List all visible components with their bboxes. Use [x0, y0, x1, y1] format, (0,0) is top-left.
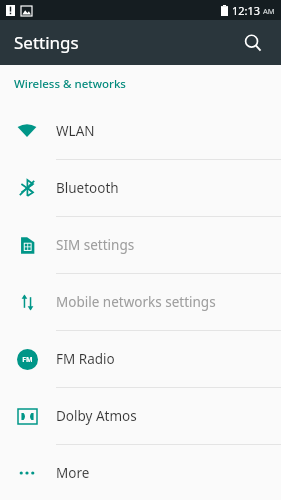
- staticText: WLAN: [56, 122, 95, 140]
- staticText: Wireless & networks: [14, 76, 126, 92]
- staticText: Settings: [14, 31, 79, 54]
- staticText: FM: [22, 355, 33, 365]
- staticText: FM Radio: [56, 350, 115, 368]
- staticText: More: [56, 464, 90, 482]
- staticText: Mobile networks settings: [56, 293, 216, 311]
- button[interactable]: WLAN: [0, 103, 281, 159]
- button[interactable]: Mobile networks settings: [0, 274, 281, 330]
- staticText: Bluetooth: [56, 179, 119, 197]
- staticText: SIM settings: [56, 236, 135, 254]
- staticText: Dolby Atmos: [56, 407, 137, 425]
- button[interactable]: Bluetooth: [0, 160, 281, 216]
- button[interactable]: Search: [233, 23, 273, 63]
- staticText: 12:13: [232, 3, 261, 18]
- button[interactable]: FM: [0, 331, 281, 387]
- staticText: AM: [263, 6, 275, 16]
- button[interactable]: Dolby Atmos: [0, 388, 281, 444]
- button[interactable]: SIM settings: [0, 217, 281, 273]
- button[interactable]: More: [0, 445, 281, 500]
